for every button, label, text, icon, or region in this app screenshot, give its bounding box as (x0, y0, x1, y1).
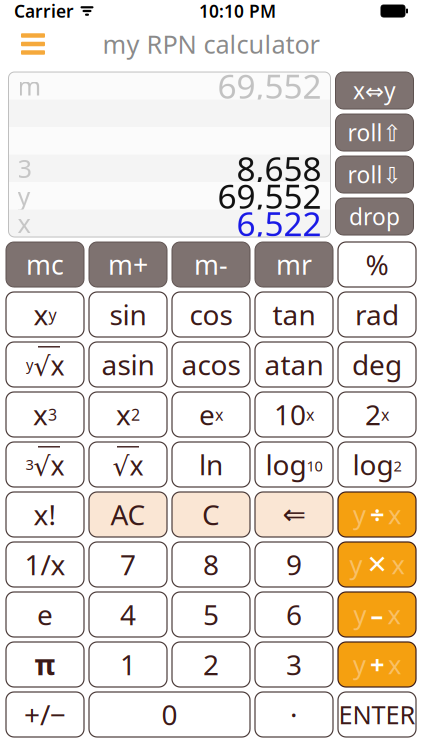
staticText: my RPN calculator (102, 27, 319, 61)
staticText: x (17, 206, 30, 240)
staticText: y (353, 598, 366, 631)
button[interactable]: ⇐ (255, 492, 333, 537)
staticText: y (353, 648, 366, 681)
staticText: ENTER (338, 698, 415, 731)
button[interactable]: 9 (255, 542, 333, 587)
button[interactable]: e (172, 392, 250, 437)
button[interactable]: ENTER (338, 692, 416, 737)
button[interactable]: 10 (255, 392, 333, 437)
button[interactable]: x⇔y (335, 72, 413, 109)
staticText: + (370, 648, 384, 681)
staticText: roll⇧ (347, 117, 401, 147)
button[interactable]: C (172, 492, 250, 537)
staticText: y (17, 179, 30, 212)
button[interactable]: 2 (172, 642, 250, 687)
staticText: x (387, 598, 400, 631)
staticText: m+ (108, 247, 148, 282)
button[interactable]: acos (172, 342, 250, 387)
button[interactable]: · (255, 692, 333, 737)
staticText: 8,658 (236, 146, 321, 190)
button[interactable]: y (338, 492, 416, 537)
button[interactable]: x! (6, 492, 84, 537)
button[interactable]: y (338, 592, 416, 637)
staticText: √x (33, 447, 64, 483)
staticText: 7 (120, 546, 136, 583)
staticText: 10 (306, 456, 322, 475)
button[interactable]: 3 (255, 642, 333, 687)
button[interactable]: x (89, 392, 167, 437)
button[interactable]: % (338, 242, 416, 287)
button[interactable]: 5 (172, 592, 250, 637)
staticText: π (34, 646, 55, 683)
staticText: · (290, 696, 298, 733)
button[interactable]: 2 (338, 392, 416, 437)
staticText: 2 (365, 396, 381, 433)
button[interactable]: tan (255, 292, 333, 337)
staticText: 5 (203, 596, 219, 633)
staticText: x (391, 548, 404, 581)
button[interactable]: 1/x (6, 542, 84, 587)
button[interactable]: π (6, 642, 84, 687)
button[interactable]: AC (89, 492, 167, 537)
staticText: log (265, 446, 306, 483)
button[interactable]: e (6, 592, 84, 637)
button[interactable]: y (6, 342, 84, 387)
button[interactable]: asin (89, 342, 167, 387)
button[interactable] (89, 442, 167, 487)
button[interactable]: log (338, 442, 416, 487)
button[interactable]: m- (172, 242, 250, 287)
staticText: C (202, 496, 220, 533)
button[interactable]: rad (338, 292, 416, 337)
staticText: ⇐ (282, 499, 305, 530)
staticText: m- (194, 247, 228, 282)
staticText: 3 (48, 404, 57, 425)
staticText: y (349, 548, 362, 581)
button[interactable]: m+ (89, 242, 167, 287)
button[interactable]: +/− (6, 692, 84, 737)
button[interactable]: x (6, 292, 84, 337)
staticText: 69,552 (217, 64, 321, 108)
staticText: x (306, 404, 314, 425)
staticText: asin (101, 346, 154, 383)
staticText: e (37, 596, 53, 633)
button[interactable]: 8 (172, 542, 250, 587)
button[interactable]: y (338, 642, 416, 687)
button[interactable]: x (6, 392, 84, 437)
staticText: 1/x (24, 546, 65, 583)
button[interactable]: log (255, 442, 333, 487)
button[interactable]: mc (6, 242, 84, 287)
staticText: x (381, 404, 389, 425)
button[interactable]: y (338, 542, 416, 587)
staticText: drop (349, 201, 400, 231)
button[interactable]: sin (89, 292, 167, 337)
staticText: y (353, 498, 366, 531)
button[interactable]: 7 (89, 542, 167, 587)
staticText: x⇔y (353, 75, 396, 105)
staticText: 1 (120, 646, 136, 683)
staticText: 69,552 (217, 174, 321, 218)
staticText: Carrier (14, 0, 74, 22)
button[interactable]: Menu (11, 22, 55, 66)
staticText: log (352, 446, 393, 483)
button[interactable]: 6 (255, 592, 333, 637)
button[interactable]: ln (172, 442, 250, 487)
staticText: 4 (120, 596, 136, 633)
button[interactable]: atan (255, 342, 333, 387)
staticText: x! (33, 496, 56, 533)
button[interactable]: 3 (6, 442, 84, 487)
staticText: atan (264, 346, 323, 383)
button[interactable]: 4 (89, 592, 167, 637)
staticText: x (33, 296, 48, 333)
staticText: 6 (286, 596, 302, 633)
button[interactable]: deg (338, 342, 416, 387)
button[interactable]: 0 (89, 692, 250, 737)
button[interactable]: 1 (89, 642, 167, 687)
button[interactable]: roll⇩ (335, 156, 413, 193)
button[interactable]: drop (335, 198, 413, 235)
button[interactable]: mr (255, 242, 333, 287)
staticText: sin (109, 296, 146, 333)
button[interactable]: roll⇧ (335, 114, 413, 151)
staticText: ✕ (366, 550, 387, 579)
staticText: % (365, 246, 388, 283)
button[interactable]: cos (172, 292, 250, 337)
